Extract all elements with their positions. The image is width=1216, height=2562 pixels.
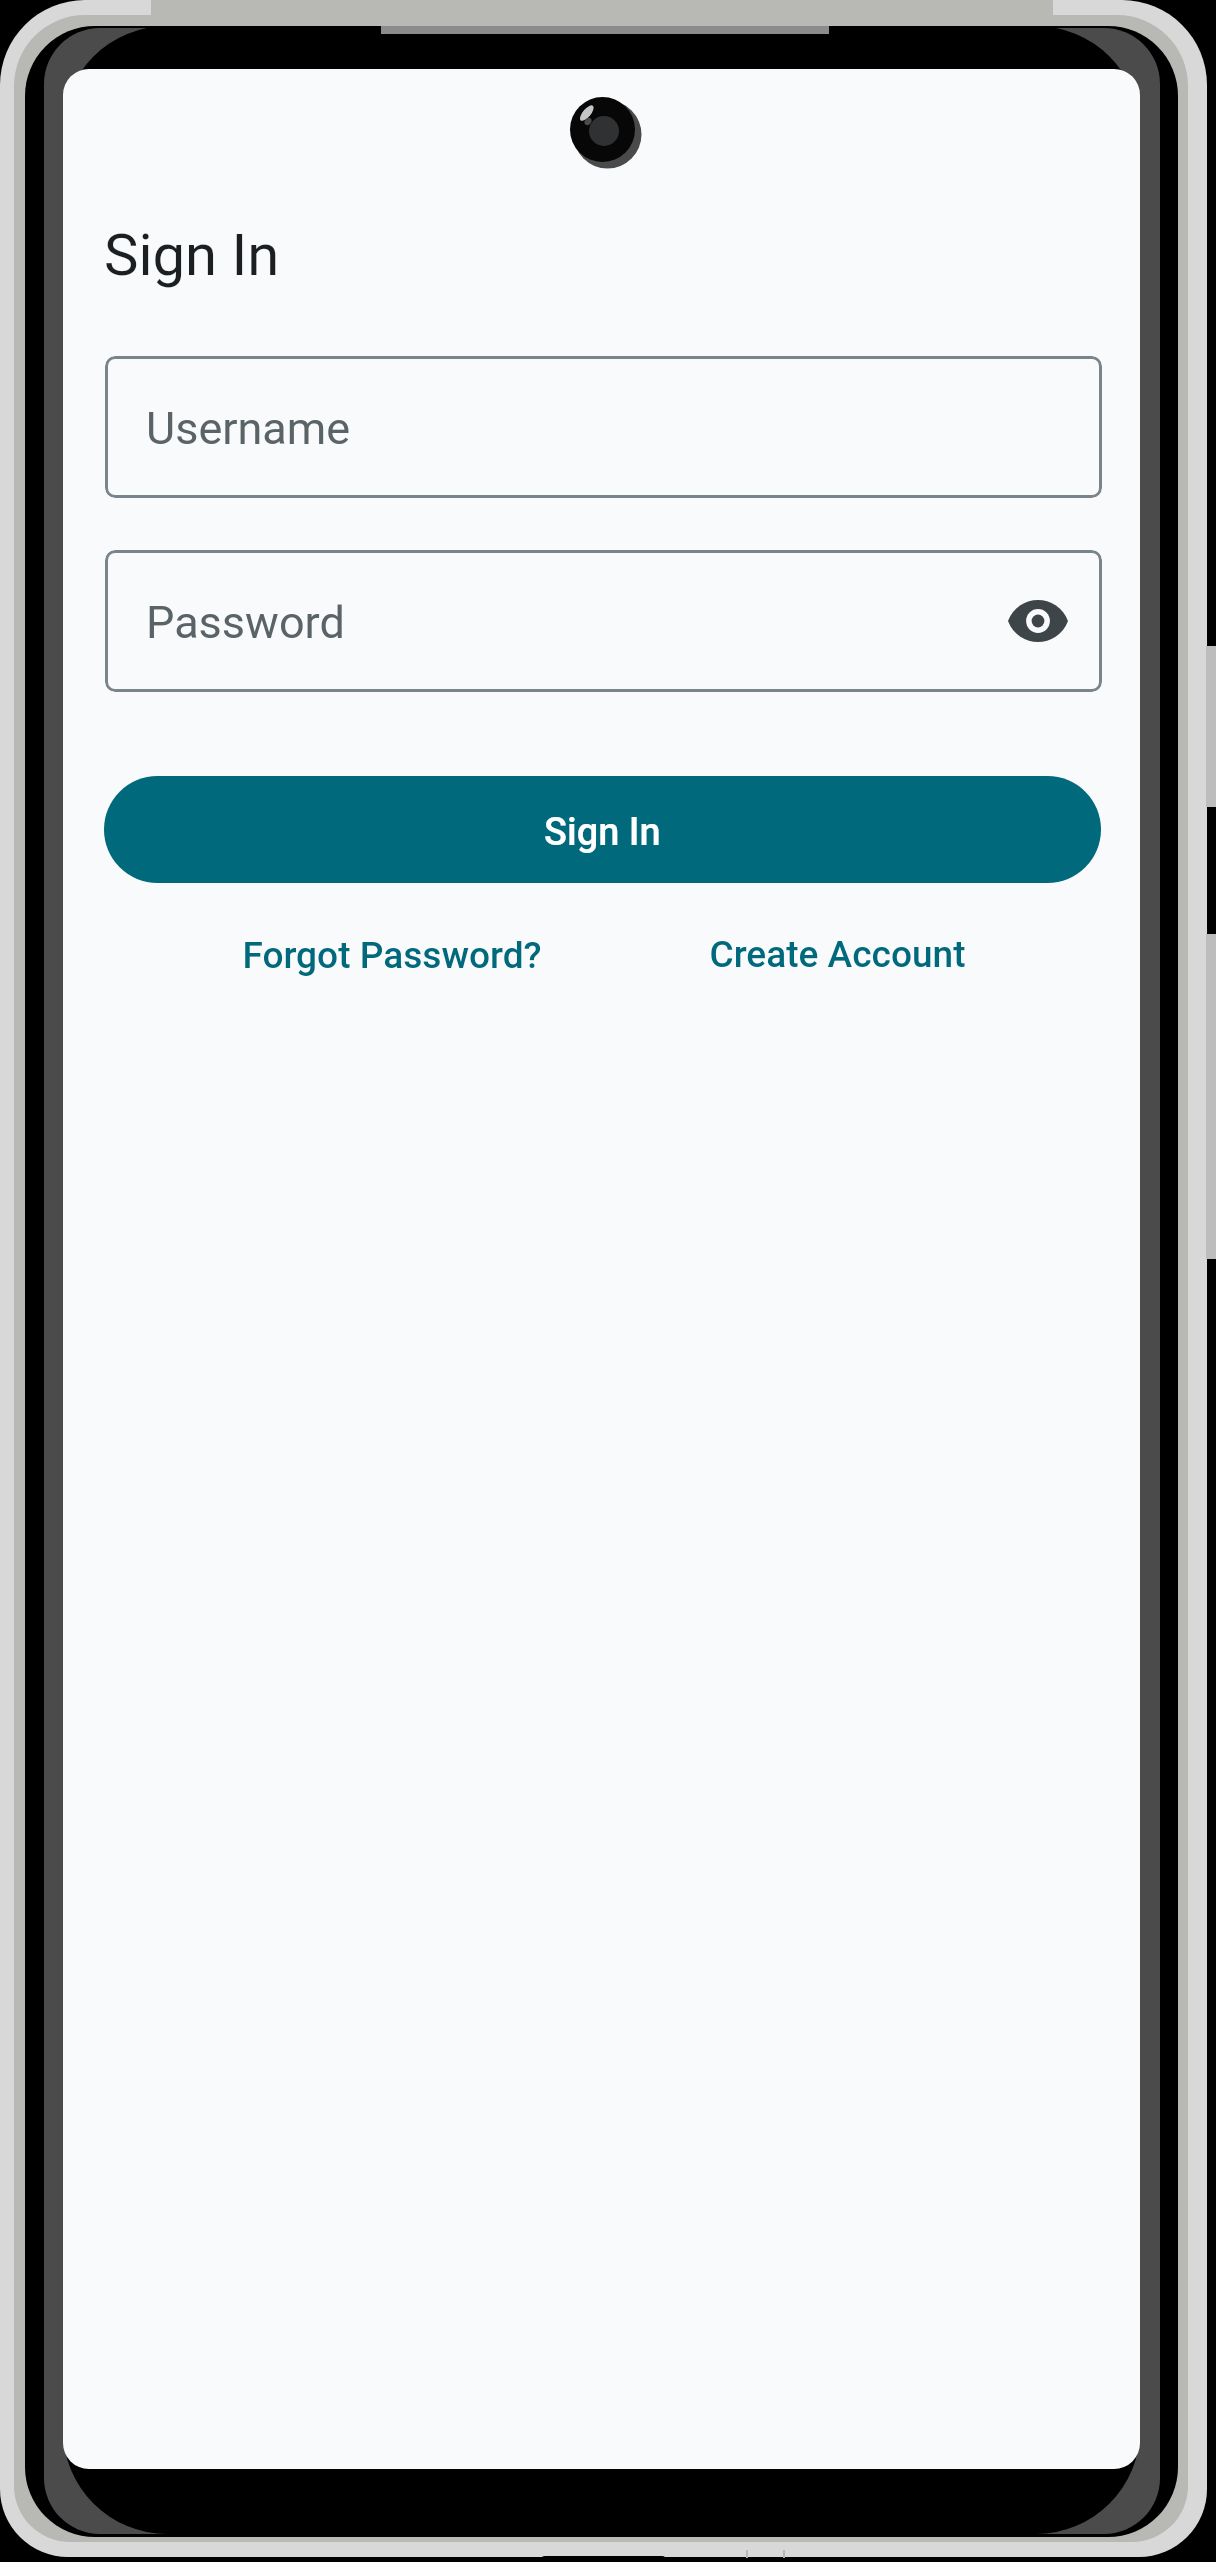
- button[interactable]: Password: [105, 550, 1102, 692]
- button[interactable]: Forgot Password?: [212, 914, 572, 992]
- staticText: Forgot Password?: [242, 928, 542, 978]
- staticText: Username: [146, 398, 351, 456]
- button[interactable]: Username: [105, 356, 1102, 498]
- staticText: Create Account: [709, 927, 966, 977]
- button[interactable]: Sign In: [104, 776, 1101, 883]
- button[interactable]: Show password: [983, 566, 1093, 676]
- button[interactable]: Create Account: [677, 913, 997, 991]
- staticText: Password: [146, 592, 345, 650]
- staticText: Sign In: [104, 218, 280, 290]
- staticText: Sign In: [544, 805, 661, 855]
